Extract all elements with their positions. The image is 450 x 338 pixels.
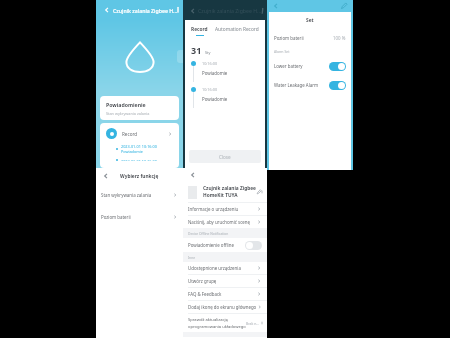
staticText: Set [306,17,314,24]
button[interactable]: Edit [262,5,263,16]
button[interactable]: Sprawdź aktualizację oprogramowania ukła… [188,317,262,329]
staticText: Udostępnione urządzenia [188,265,241,271]
button[interactable]: Edit [339,1,349,11]
button[interactable]: Informacje o urządzeniu [188,203,262,215]
staticText: Poziom baterii [274,35,304,41]
staticText: Wybierz funkcję [120,173,159,180]
staticText: 2023-01-01 10:16:00 Powiadomie [121,144,179,154]
button[interactable]: Toggle [245,241,262,250]
staticText: Close [219,154,231,160]
button[interactable]: Powiadomienie offline [188,238,262,252]
staticText: Poziom baterii [101,214,131,220]
button[interactable]: Naciśnij, aby uruchomić scenę [188,216,262,228]
staticText: Device Offline Notification [188,231,229,235]
button[interactable]: Close [189,150,261,163]
button[interactable]: Water Leakage Alarm [274,79,346,91]
staticText: Powiadomienie [106,101,146,108]
button[interactable]: Poziom baterii [274,32,346,44]
button[interactable]: Udostępnione urządzenia [188,262,262,274]
staticText: Czujnik zalania Zigbee HomeKit TUYA [203,185,256,199]
staticText: Dodaj ikonę do ekranu głównego [188,304,257,310]
staticText: Record [122,131,138,137]
button[interactable]: Poziom baterii [101,211,178,223]
staticText: Informacje o urządzeniu [188,206,239,212]
button[interactable]: Back [188,170,198,180]
staticText: Powiadomie [202,96,228,102]
staticText: Powiadomie [202,70,228,76]
button[interactable]: Record [191,26,208,36]
staticText: Czujnik zalania Zigbee H... [113,7,178,14]
staticText: Brak n... [246,321,259,326]
staticText: 2023-01-01 10:16:00 Powiadomie [121,159,179,161]
button[interactable]: FAQ & Feedback [188,288,262,300]
button[interactable]: Lower battery [274,60,346,72]
staticText: 10:16:00 [202,61,218,66]
staticText: 31 [191,44,202,56]
button[interactable]: Toggle [329,62,346,71]
staticText: Water Leakage Alarm [274,82,319,88]
staticText: Lower battery [274,63,303,69]
button[interactable]: Back [101,4,113,16]
button[interactable]: Automation Record [215,26,259,33]
staticText: Inne [188,255,196,259]
button[interactable]: Toggle [329,81,346,90]
button[interactable]: Czujnik zalania Zigbee HomeKit TUYA [188,185,262,199]
button[interactable]: Powiadomienie [100,96,179,120]
staticText: Utwórz grupę [188,278,217,284]
button[interactable]: Stan wykrywania zalania [101,189,178,201]
button[interactable]: Back [271,1,281,11]
staticText: Sprawdź aktualizację oprogramowania ukła… [188,317,246,329]
staticText: Alarm Set [274,49,290,54]
staticText: Sty [205,50,211,55]
button[interactable]: Utwórz grupę [188,275,262,287]
staticText: Powiadomienie offline [188,242,234,248]
staticText: Stan wykrywania zalania [101,192,152,198]
staticText: FAQ & Feedback [188,291,222,297]
staticText: Czujnik zalania Zigbee H... [198,7,262,14]
staticText: Record [191,26,208,33]
button[interactable]: Expand panel [177,50,183,63]
button[interactable]: Back [101,171,111,181]
staticText: Naciśnij, aby uruchomić scenę [188,219,250,225]
staticText: Stan wykrywania zalania [106,111,150,116]
button[interactable]: Record [100,123,179,168]
staticText: 10:16:00 [202,87,218,92]
button[interactable]: Back [187,5,198,16]
button[interactable]: Dodaj ikonę do ekranu głównego [188,301,262,313]
staticText: 100 % [333,35,346,41]
